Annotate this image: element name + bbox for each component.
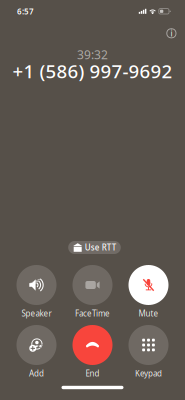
button[interactable]: Add bbox=[8, 325, 64, 379]
staticText: End bbox=[85, 368, 99, 379]
staticText: Add bbox=[29, 368, 44, 379]
staticText: 6:57 bbox=[17, 6, 34, 17]
staticText: 39:32 bbox=[77, 46, 108, 62]
staticText: +1 (586) 997-9692 bbox=[12, 59, 172, 83]
staticText: Mute bbox=[138, 308, 158, 319]
button[interactable]: Use RTT bbox=[68, 241, 121, 254]
staticText: FaceTime bbox=[75, 308, 110, 319]
button[interactable]: Call info bbox=[160, 22, 182, 44]
button[interactable]: FaceTime bbox=[64, 265, 120, 319]
staticText: Keypad bbox=[135, 368, 162, 379]
staticText: i bbox=[170, 28, 172, 39]
button[interactable]: End bbox=[64, 325, 120, 379]
staticText: Speaker bbox=[21, 308, 51, 319]
staticText: Use RTT bbox=[85, 242, 116, 253]
button[interactable]: Mute bbox=[120, 265, 176, 319]
button[interactable]: Keypad bbox=[120, 325, 176, 379]
button[interactable]: Speaker bbox=[8, 265, 64, 319]
